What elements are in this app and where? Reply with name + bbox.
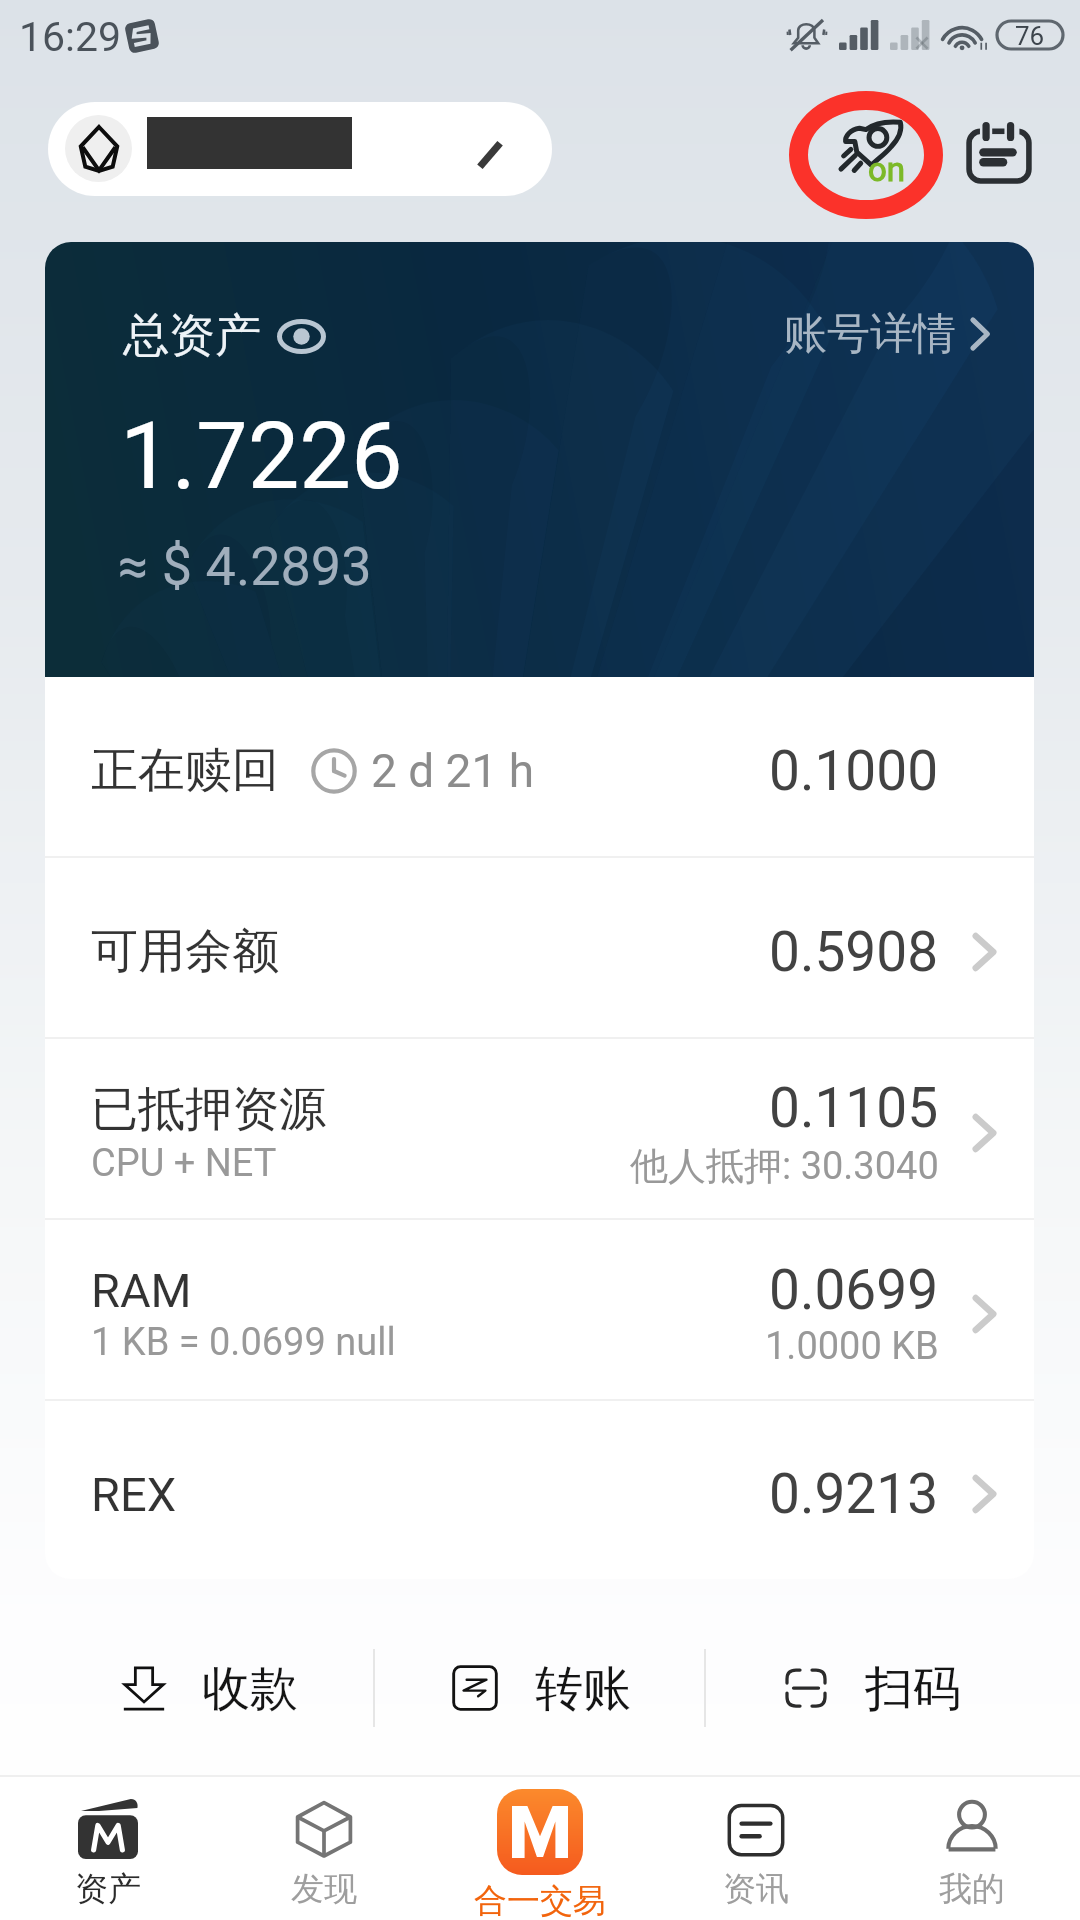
staticText: REX [91,1467,177,1522]
staticText: 0.5908 [769,920,939,984]
staticText: 1.0000 KB [765,1324,939,1369]
staticText: 可用余额 [91,922,279,981]
button[interactable]: 可用余额 [45,858,1034,1037]
staticText: on [868,150,906,189]
button[interactable]: 收款 [45,1603,373,1773]
staticText: CPU + NET [91,1141,277,1186]
button[interactable]: 账号详情 [784,307,989,361]
button[interactable]: 转账 [375,1603,704,1773]
staticText: ≈ $ 4.2893 [118,535,372,598]
staticText: 2 d 21 h [371,744,535,798]
staticText: RAM [91,1263,192,1318]
button[interactable]: 已抵押资源 [45,1039,1034,1218]
button[interactable]: 合一交易 [432,1777,648,1920]
staticText: 1.7226 [120,403,403,511]
staticText: 发现 [291,1868,357,1910]
staticText: 收款 [202,1659,298,1719]
button[interactable]: Notes [952,104,1046,198]
button[interactable]: RAM [45,1220,1034,1399]
staticText: 0.9213 [769,1462,939,1526]
button[interactable]: REX [45,1401,1034,1579]
staticText: 合一交易 [474,1880,606,1920]
button[interactable]: 正在赎回 [45,677,1034,856]
staticText: 扫码 [865,1659,961,1719]
button[interactable]: 扫码 [706,1603,1035,1773]
staticText: 正在赎回 [91,741,279,800]
button[interactable]: 资讯 [648,1777,864,1920]
button[interactable]: 资产 [0,1777,216,1920]
button[interactable]: Toggle balance visibility [277,319,326,354]
staticText: 他人抵押: 30.3040 [630,1142,939,1190]
button[interactable]: Rocket on [787,89,945,221]
staticText: 16:29 [19,13,122,61]
staticText: 1 KB = 0.0699 null [91,1320,396,1365]
staticText: 0.0699 [769,1258,939,1322]
staticText: 已抵押资源 [91,1080,326,1139]
staticText: 账号详情 [784,307,956,361]
staticText: 转账 [535,1659,631,1719]
staticText: 总资产 [123,307,261,365]
button[interactable] [48,102,552,196]
staticText: 76 [1015,21,1045,49]
button[interactable]: 我的 [864,1777,1080,1920]
staticText: 资讯 [723,1868,789,1910]
staticText: 0.1000 [769,739,939,803]
button[interactable]: 发现 [216,1777,432,1920]
staticText: 资产 [75,1868,141,1910]
staticText: 0.1105 [769,1076,939,1140]
staticText: 我的 [939,1868,1005,1910]
